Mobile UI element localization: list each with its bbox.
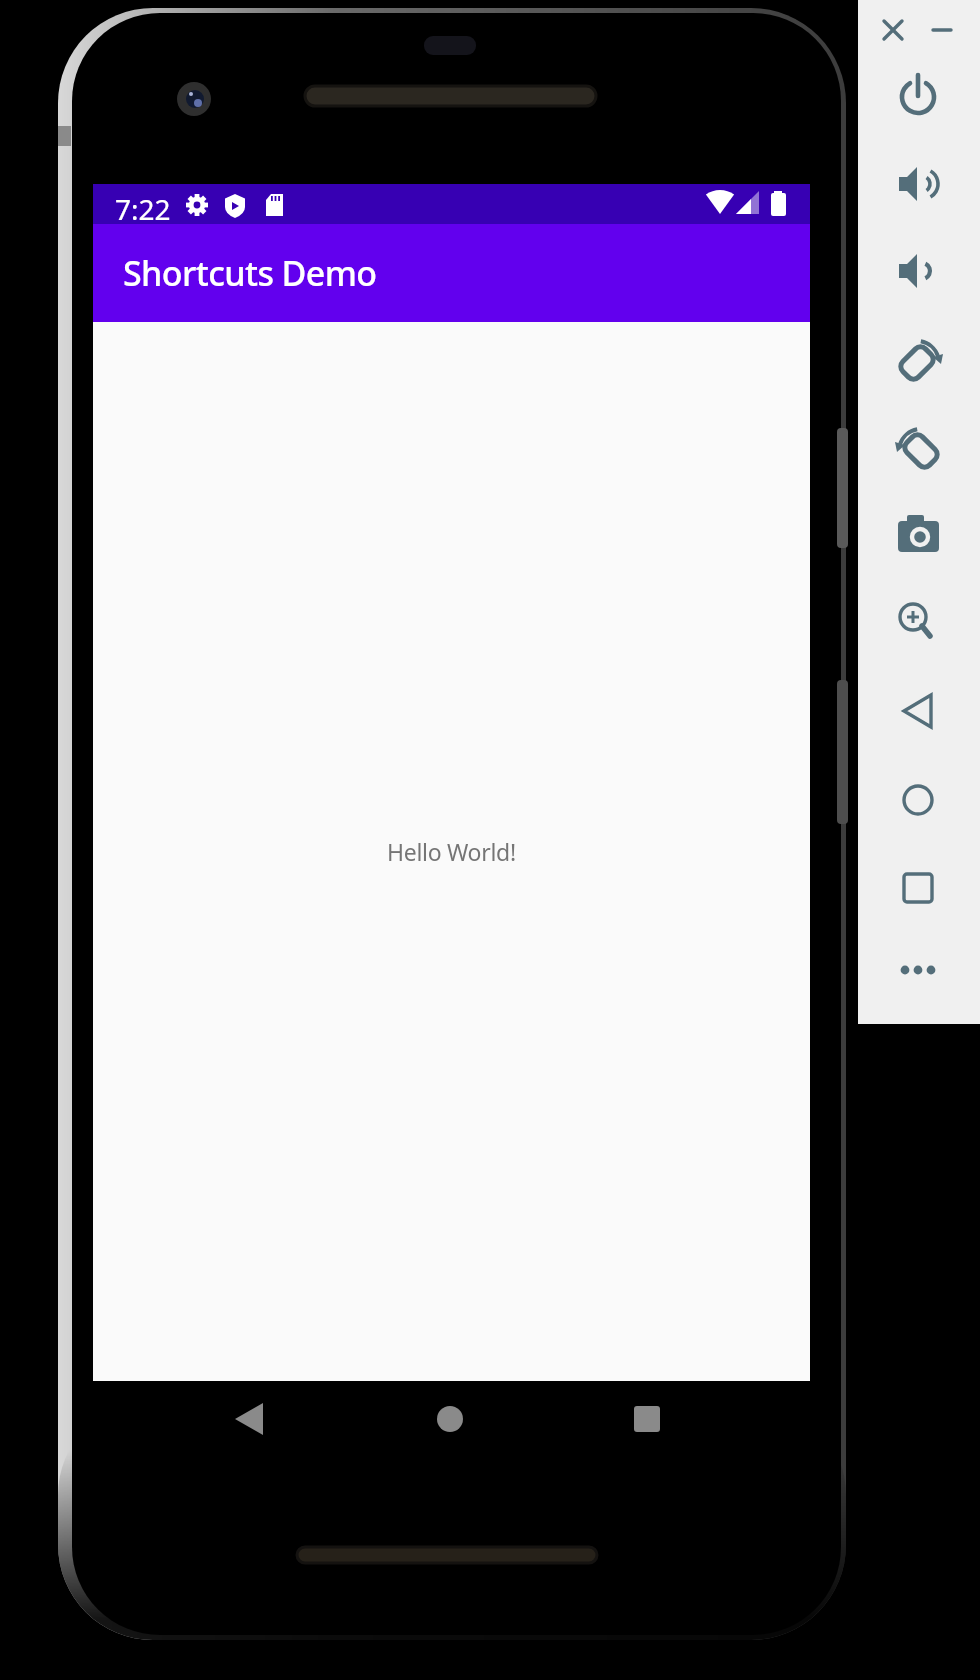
button[interactable] [892, 247, 940, 295]
staticText: Hello World! [387, 836, 516, 867]
button[interactable] [622, 1394, 672, 1444]
button[interactable] [894, 687, 942, 735]
button[interactable] [425, 1394, 475, 1444]
button[interactable] [894, 511, 942, 559]
button[interactable] [869, 6, 917, 54]
button[interactable] [894, 946, 942, 994]
button[interactable] [892, 160, 940, 208]
button[interactable] [918, 6, 966, 54]
button[interactable] [894, 864, 942, 912]
button[interactable] [225, 1394, 275, 1444]
button[interactable] [895, 337, 943, 385]
staticText: Shortcuts Demo [123, 250, 377, 296]
button[interactable] [889, 593, 937, 641]
button[interactable] [895, 425, 943, 473]
staticText: 7:22 [115, 190, 171, 228]
button[interactable] [894, 776, 942, 824]
button[interactable] [894, 71, 942, 119]
